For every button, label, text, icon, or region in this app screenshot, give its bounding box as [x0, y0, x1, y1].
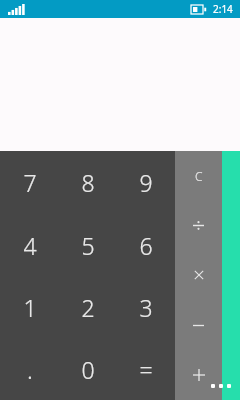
button[interactable]: Divide	[175, 200, 222, 250]
staticText: .	[27, 353, 33, 386]
button[interactable]: 7	[0, 151, 59, 214]
button[interactable]: More options	[209, 379, 233, 393]
button[interactable]: Multiply	[175, 250, 222, 300]
staticText: 8	[81, 167, 95, 198]
button[interactable]: Subtract	[175, 300, 222, 350]
staticText: 2	[81, 292, 95, 323]
button[interactable]: 9	[117, 151, 175, 214]
staticText: 6	[139, 230, 153, 261]
staticText: C	[195, 168, 203, 184]
staticText: 7	[23, 167, 37, 198]
staticText: 5	[81, 230, 95, 261]
button[interactable]: 3	[117, 276, 175, 338]
staticText: 1	[23, 292, 37, 323]
staticText: 9	[139, 167, 153, 198]
button[interactable]: 1	[0, 276, 59, 338]
button[interactable]: 0	[59, 338, 117, 400]
staticText: 2:14	[213, 2, 233, 16]
button[interactable]: Clear	[175, 151, 222, 200]
staticText: =	[139, 354, 153, 385]
button[interactable]: 2	[59, 276, 117, 338]
staticText: 3	[139, 292, 153, 323]
button[interactable]: .	[0, 338, 59, 400]
button[interactable]: 8	[59, 151, 117, 214]
staticText: 4	[23, 230, 37, 261]
button[interactable]: 4	[0, 214, 59, 276]
staticText: 0	[81, 354, 95, 385]
button[interactable]: 6	[117, 214, 175, 276]
button[interactable]: Add	[175, 350, 222, 400]
button[interactable]: 5	[59, 214, 117, 276]
button[interactable]: =	[117, 338, 175, 400]
